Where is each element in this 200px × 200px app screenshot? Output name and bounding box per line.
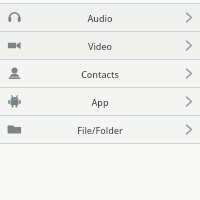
staticText: Video <box>0 40 200 52</box>
button[interactable]: Video <box>0 32 200 59</box>
button[interactable]: App <box>0 88 200 115</box>
button[interactable]: Audio <box>0 4 200 31</box>
staticText: File/Folder <box>0 124 200 136</box>
button[interactable]: File/Folder <box>0 116 200 143</box>
button[interactable]: Contacts <box>0 60 200 87</box>
staticText: Contacts <box>0 68 200 80</box>
staticText: Audio <box>0 12 200 24</box>
staticText: App <box>0 96 200 108</box>
